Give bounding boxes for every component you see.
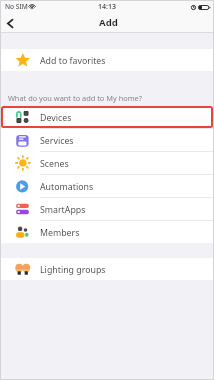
staticText: Services: [40, 135, 74, 147]
staticText: Scenes: [40, 158, 69, 170]
staticText: Members: [40, 227, 80, 239]
button[interactable]: Members: [0, 221, 214, 243]
button[interactable]: Automations: [0, 175, 214, 197]
staticText: Add to favorites: [40, 55, 106, 67]
button[interactable]: SmartApps: [0, 198, 214, 220]
button[interactable]: Devices: [0, 106, 214, 128]
staticText: Devices: [40, 112, 72, 124]
button[interactable]: Scenes: [0, 152, 214, 174]
staticText: Add: [99, 16, 118, 29]
staticText: What do you want to add to My home?: [8, 93, 142, 103]
staticText: No SIM: [5, 2, 28, 11]
staticText: 14:13: [98, 2, 116, 12]
button[interactable]: Lighting groups: [0, 258, 214, 280]
button[interactable]: Add to favorites: [0, 49, 214, 71]
staticText: Automations: [40, 181, 94, 193]
staticText: Lighting groups: [40, 264, 106, 276]
button[interactable]: Back: [0, 14, 20, 33]
button[interactable]: Services: [0, 129, 214, 151]
staticText: SmartApps: [40, 204, 86, 216]
